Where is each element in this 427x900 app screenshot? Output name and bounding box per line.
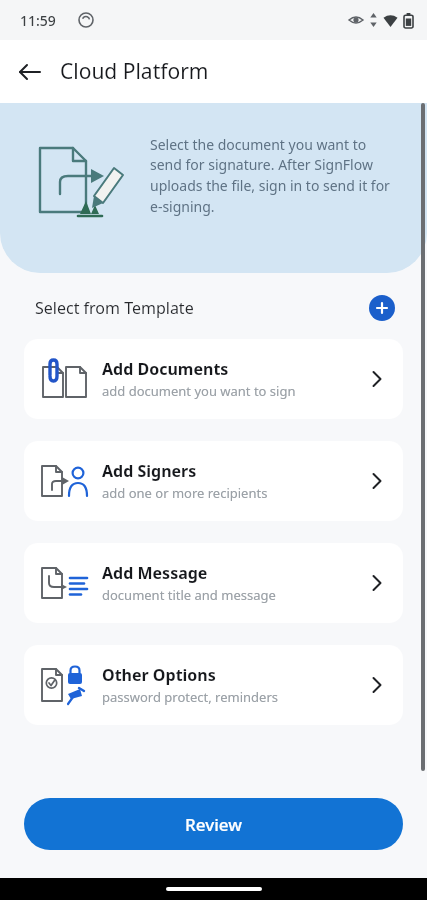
staticText: add one or more recipients — [102, 484, 268, 502]
button[interactable]: Review — [24, 798, 403, 850]
staticText: Add Signers — [102, 460, 197, 482]
staticText: document title and message — [102, 586, 276, 604]
staticText: add document you want to sign — [102, 382, 296, 400]
staticText: Select from Template — [35, 297, 194, 319]
button[interactable]: Back — [8, 50, 52, 94]
staticText: Select the document you want to send for… — [150, 135, 399, 217]
staticText: 11:59 — [20, 11, 56, 30]
button[interactable]: Add template — [369, 295, 395, 321]
button[interactable]: Add Documents — [24, 339, 403, 419]
staticText: Other Options — [102, 664, 216, 686]
button[interactable]: Add Signers — [24, 441, 403, 521]
button[interactable]: Other Options — [24, 645, 403, 725]
staticText: Add Message — [102, 562, 208, 584]
staticText: password protect, reminders — [102, 688, 279, 706]
button[interactable]: Add Message — [24, 543, 403, 623]
staticText: Cloud Platform — [60, 57, 209, 86]
staticText: Review — [185, 813, 242, 836]
staticText: Add Documents — [102, 358, 229, 380]
